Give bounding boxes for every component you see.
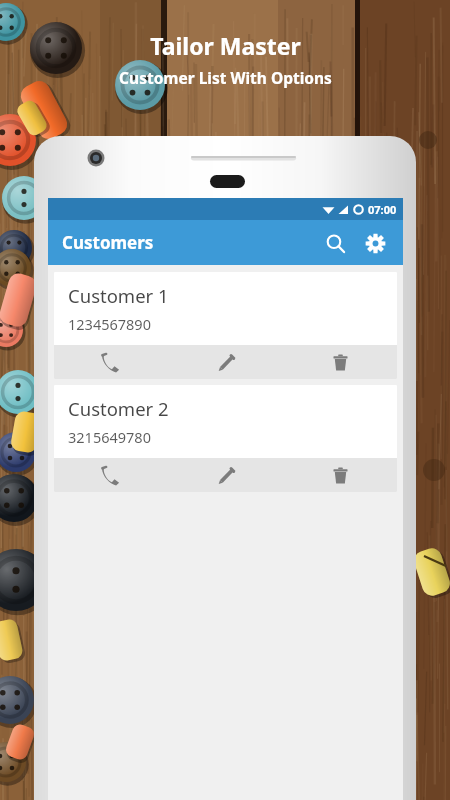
- button[interactable]: Search: [315, 223, 355, 263]
- staticText: 3215649780: [68, 427, 151, 447]
- button[interactable]: Settings: [355, 223, 395, 263]
- staticText: Customer List With Options: [119, 67, 332, 88]
- staticText: Customer 1: [68, 283, 169, 308]
- staticText: 07:00: [368, 202, 397, 217]
- staticText: Customers: [62, 231, 154, 254]
- button[interactable]: Call: [54, 345, 169, 379]
- staticText: Tailor Master: [150, 30, 301, 61]
- button[interactable]: Call: [54, 458, 169, 492]
- button[interactable]: Edit: [169, 458, 283, 492]
- button[interactable]: Customer 2: [54, 385, 397, 492]
- button[interactable]: Delete: [283, 458, 397, 492]
- staticText: 1234567890: [68, 314, 151, 334]
- button[interactable]: Customer 1: [54, 272, 397, 379]
- button[interactable]: Edit: [169, 345, 283, 379]
- button[interactable]: Delete: [283, 345, 397, 379]
- staticText: Customer 2: [68, 396, 169, 421]
